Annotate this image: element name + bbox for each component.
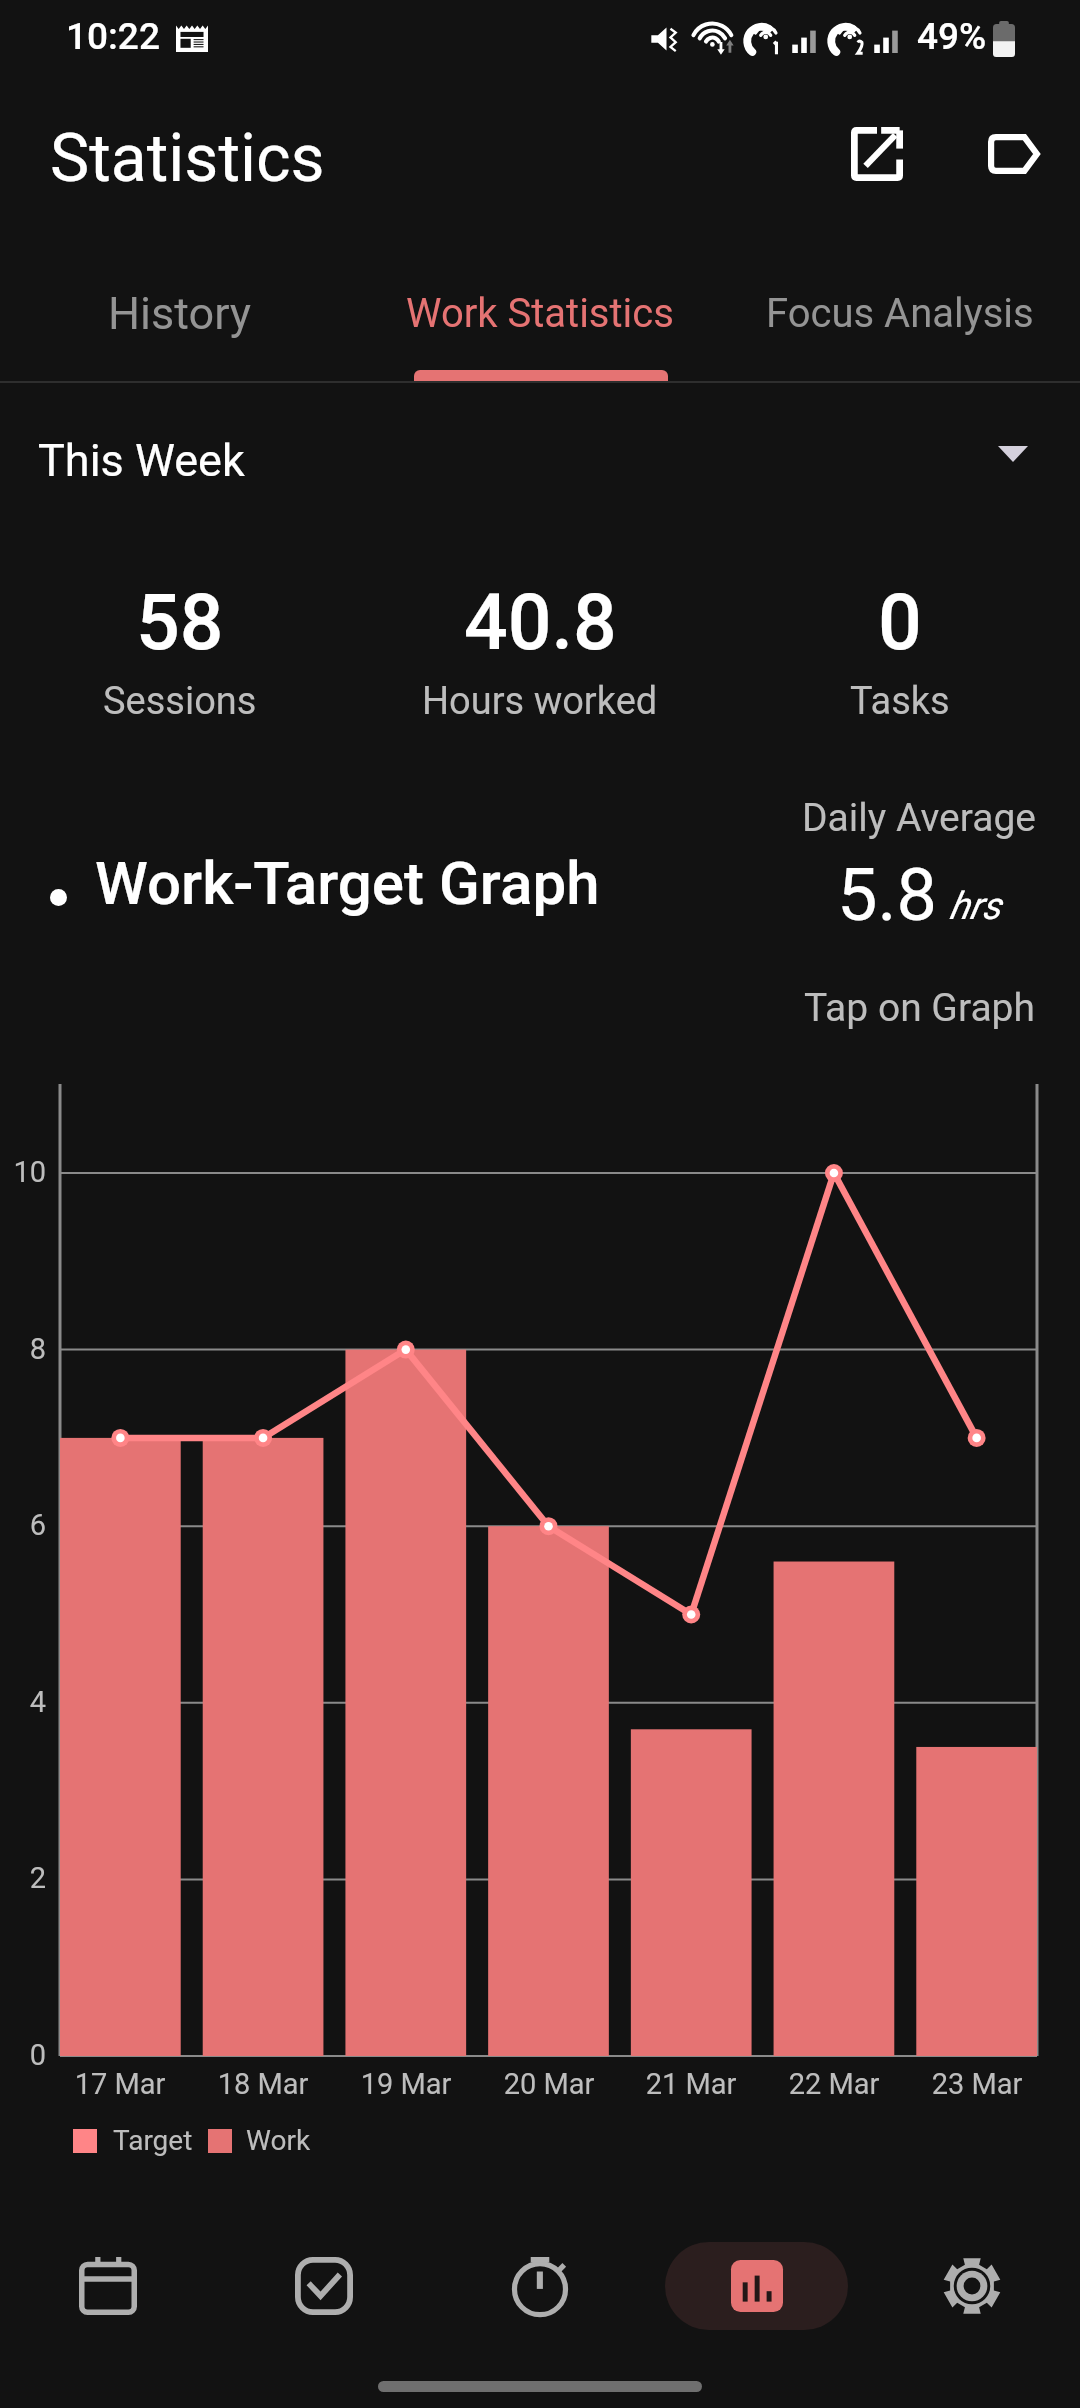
staticText: 10:22 [66,15,160,58]
staticText: 21 Mar [621,2067,761,2101]
staticText: Focus Analysis [766,290,1034,337]
staticText: 8 [0,1332,46,1366]
staticText: Target [113,2124,193,2157]
button[interactable]: Focus Analysis [720,231,1080,381]
staticText: 17 Mar [50,2067,190,2101]
button[interactable]: Work Statistics [360,231,720,381]
staticText: 58 [136,578,224,668]
staticText: 49% [917,15,987,58]
staticText: Sessions [103,679,257,724]
button[interactable]: Label [954,94,1074,214]
staticText: 40.8 [464,578,617,668]
staticText: 10 [0,1155,46,1189]
staticText: Tap on Graph [804,985,1035,1031]
button[interactable]: Export [817,94,937,214]
staticText: Daily Average [802,795,1036,841]
button[interactable]: Tasks [216,2222,432,2350]
button[interactable]: History [0,231,360,381]
staticText: History [108,287,252,340]
staticText: This Week [38,434,245,487]
staticText: 2 [0,1861,46,1895]
button[interactable]: Statistics [648,2222,864,2350]
staticText: 5.8 [837,853,937,937]
staticText: Work [246,2124,311,2157]
staticText: Work-Target Graph [95,848,600,918]
staticText: 20 Mar [479,2067,619,2101]
staticText: hrs [949,884,1001,929]
staticText: Statistics [50,120,325,197]
staticText: 0 [0,2038,46,2072]
button[interactable]: 0 [0,0,1080,2408]
staticText: Hours worked [422,679,658,724]
staticText: 23 Mar [907,2067,1047,2101]
staticText: Work Statistics [406,290,674,337]
staticText: 19 Mar [336,2067,476,2101]
staticText: Tasks [850,679,950,724]
staticText: 0 [878,578,922,668]
button[interactable]: Settings [864,2222,1080,2350]
staticText: 18 Mar [193,2067,333,2101]
staticText: 4 [0,1685,46,1719]
button[interactable]: Timer [432,2222,648,2350]
button[interactable]: Calendar [0,2222,216,2350]
staticText: 6 [0,1508,46,1542]
staticText: 22 Mar [764,2067,904,2101]
button[interactable]: This Week [0,405,1080,515]
